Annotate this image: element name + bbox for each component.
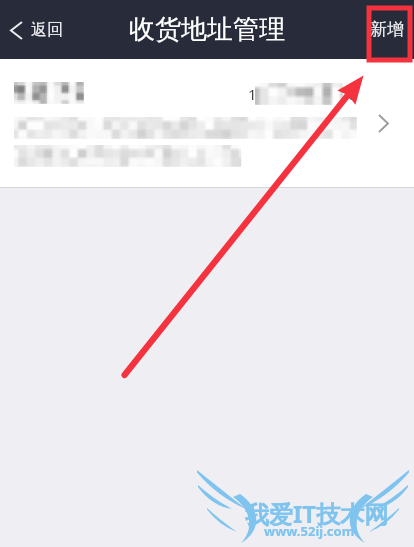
button[interactable]: 返回 xyxy=(2,10,71,50)
staticText: 收货地址管理 xyxy=(129,13,285,46)
staticText: 我爱IT技术网 xyxy=(245,497,389,530)
staticText: 1 xyxy=(248,84,257,104)
button[interactable]: 新增 xyxy=(363,9,411,50)
button[interactable]: 1 xyxy=(0,59,414,188)
staticText: www.52ij.com xyxy=(264,522,355,540)
staticText: 新增 xyxy=(370,19,404,40)
staticText: 返回 xyxy=(31,20,63,40)
staticText: 0 xyxy=(348,84,357,104)
other: 查看地址详情 xyxy=(378,114,389,133)
